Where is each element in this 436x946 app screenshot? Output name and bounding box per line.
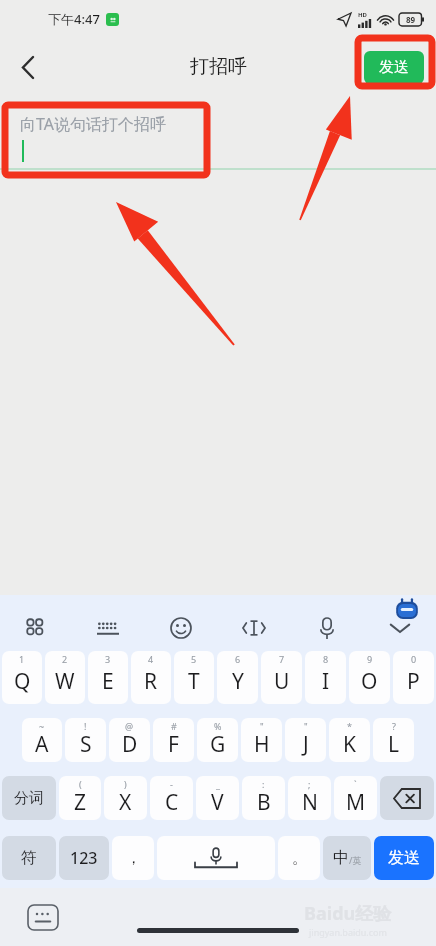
button[interactable]: Back — [6, 45, 50, 89]
button[interactable]: " — [241, 718, 282, 762]
staticText: T — [188, 667, 200, 696]
staticText: 分词 — [14, 789, 44, 808]
staticText: V — [211, 788, 224, 817]
staticText: ? — [392, 720, 396, 732]
button[interactable]: Space, voice input — [157, 836, 275, 880]
staticText: jingyan.baidu.com — [309, 926, 387, 938]
staticText: Q — [14, 667, 31, 696]
button[interactable]: 4 — [131, 651, 171, 704]
button[interactable]: Hide keyboard — [363, 611, 436, 645]
staticText: H — [254, 730, 270, 759]
staticText: D — [122, 730, 138, 759]
staticText: K — [343, 730, 356, 759]
staticText: # — [171, 720, 177, 732]
button[interactable]: Voice input — [290, 611, 363, 645]
staticText: A — [35, 730, 49, 759]
button[interactable]: 2 — [45, 651, 85, 704]
staticText: @ — [125, 720, 134, 732]
button[interactable]: 6 — [217, 651, 258, 704]
staticText: : — [262, 778, 265, 790]
button[interactable]: * — [329, 718, 370, 762]
button[interactable]: _ — [196, 776, 239, 820]
button[interactable]: ! — [65, 718, 106, 762]
staticText: N — [302, 788, 318, 817]
button[interactable]: # — [153, 718, 194, 762]
staticText: S — [80, 730, 92, 759]
staticText: W — [55, 667, 75, 696]
staticText: ) — [124, 778, 127, 790]
button[interactable]: Keyboard layout — [72, 611, 144, 645]
button[interactable]: 发送 — [364, 51, 424, 84]
staticText: 中 — [333, 848, 349, 868]
button[interactable]: ? — [373, 718, 414, 762]
button[interactable]: 9 — [349, 651, 390, 704]
staticText: Z — [74, 788, 87, 817]
staticText: 123 — [70, 847, 98, 869]
button[interactable]: 8 — [305, 651, 346, 704]
staticText: 1 — [19, 653, 25, 665]
staticText: 3 — [105, 653, 111, 665]
staticText: I — [322, 667, 330, 696]
staticText: X — [119, 788, 132, 817]
staticText: 7 — [279, 653, 285, 665]
button[interactable]: 3 — [88, 651, 128, 704]
staticText: 符 — [21, 848, 37, 868]
button[interactable]: ~ — [22, 718, 62, 762]
button[interactable]: 7 — [261, 651, 302, 704]
staticText: HD — [358, 11, 367, 19]
staticText: U — [274, 667, 290, 696]
button[interactable]: @ — [109, 718, 150, 762]
staticText: ( — [79, 778, 82, 790]
button[interactable]: 分词 — [2, 776, 56, 820]
staticText: Baidu经验 — [304, 901, 392, 926]
button[interactable]: Apps — [0, 611, 72, 645]
staticText: ` — [354, 778, 357, 790]
button[interactable]: ` — [334, 776, 377, 820]
staticText: 5 — [191, 653, 197, 665]
button[interactable]: - — [150, 776, 193, 820]
button[interactable]: 0 — [393, 651, 434, 704]
staticText: J — [303, 730, 309, 759]
staticText: 6 — [235, 653, 241, 665]
button[interactable]: % — [197, 718, 238, 762]
button[interactable]: " — [285, 718, 326, 762]
staticText: 9 — [367, 653, 373, 665]
staticText: 。 — [292, 849, 307, 868]
button[interactable]: Switch input method — [28, 905, 58, 930]
button[interactable]: ) — [104, 776, 147, 820]
staticText: Y — [232, 667, 244, 696]
staticText: " — [304, 720, 308, 732]
button[interactable]: Backspace — [380, 776, 434, 820]
staticText: " — [260, 720, 264, 732]
button[interactable]: 1 — [2, 651, 42, 704]
button[interactable]: 123 — [59, 836, 109, 880]
staticText: B — [257, 788, 271, 817]
staticText: O — [361, 667, 378, 696]
button[interactable]: 。 — [278, 836, 320, 880]
button[interactable]: 向TA说句话打个招呼 — [0, 96, 436, 168]
staticText: ， — [126, 849, 141, 868]
staticText: ; — [308, 778, 311, 790]
staticText: M — [346, 788, 366, 817]
button[interactable]: 中 — [323, 836, 371, 880]
staticText: _ — [216, 778, 220, 790]
staticText: G — [210, 730, 226, 759]
staticText: C — [165, 788, 179, 817]
staticText: 89 — [406, 14, 416, 25]
button[interactable]: : — [242, 776, 285, 820]
staticText: 下午4:47 — [48, 10, 100, 28]
button[interactable]: 符 — [2, 836, 56, 880]
staticText: - — [170, 778, 173, 790]
staticText: 4 — [148, 653, 154, 665]
button[interactable]: 5 — [174, 651, 214, 704]
staticText: 打招呼 — [190, 55, 247, 79]
staticText: * — [347, 720, 352, 732]
button[interactable]: 发送 — [374, 836, 434, 880]
button[interactable]: ， — [112, 836, 154, 880]
button[interactable]: Emoji — [144, 611, 217, 645]
button[interactable]: Edit text — [217, 611, 290, 645]
staticText: L — [388, 730, 400, 759]
button[interactable]: ( — [59, 776, 101, 820]
staticText: 发送 — [388, 848, 420, 868]
button[interactable]: ; — [288, 776, 331, 820]
